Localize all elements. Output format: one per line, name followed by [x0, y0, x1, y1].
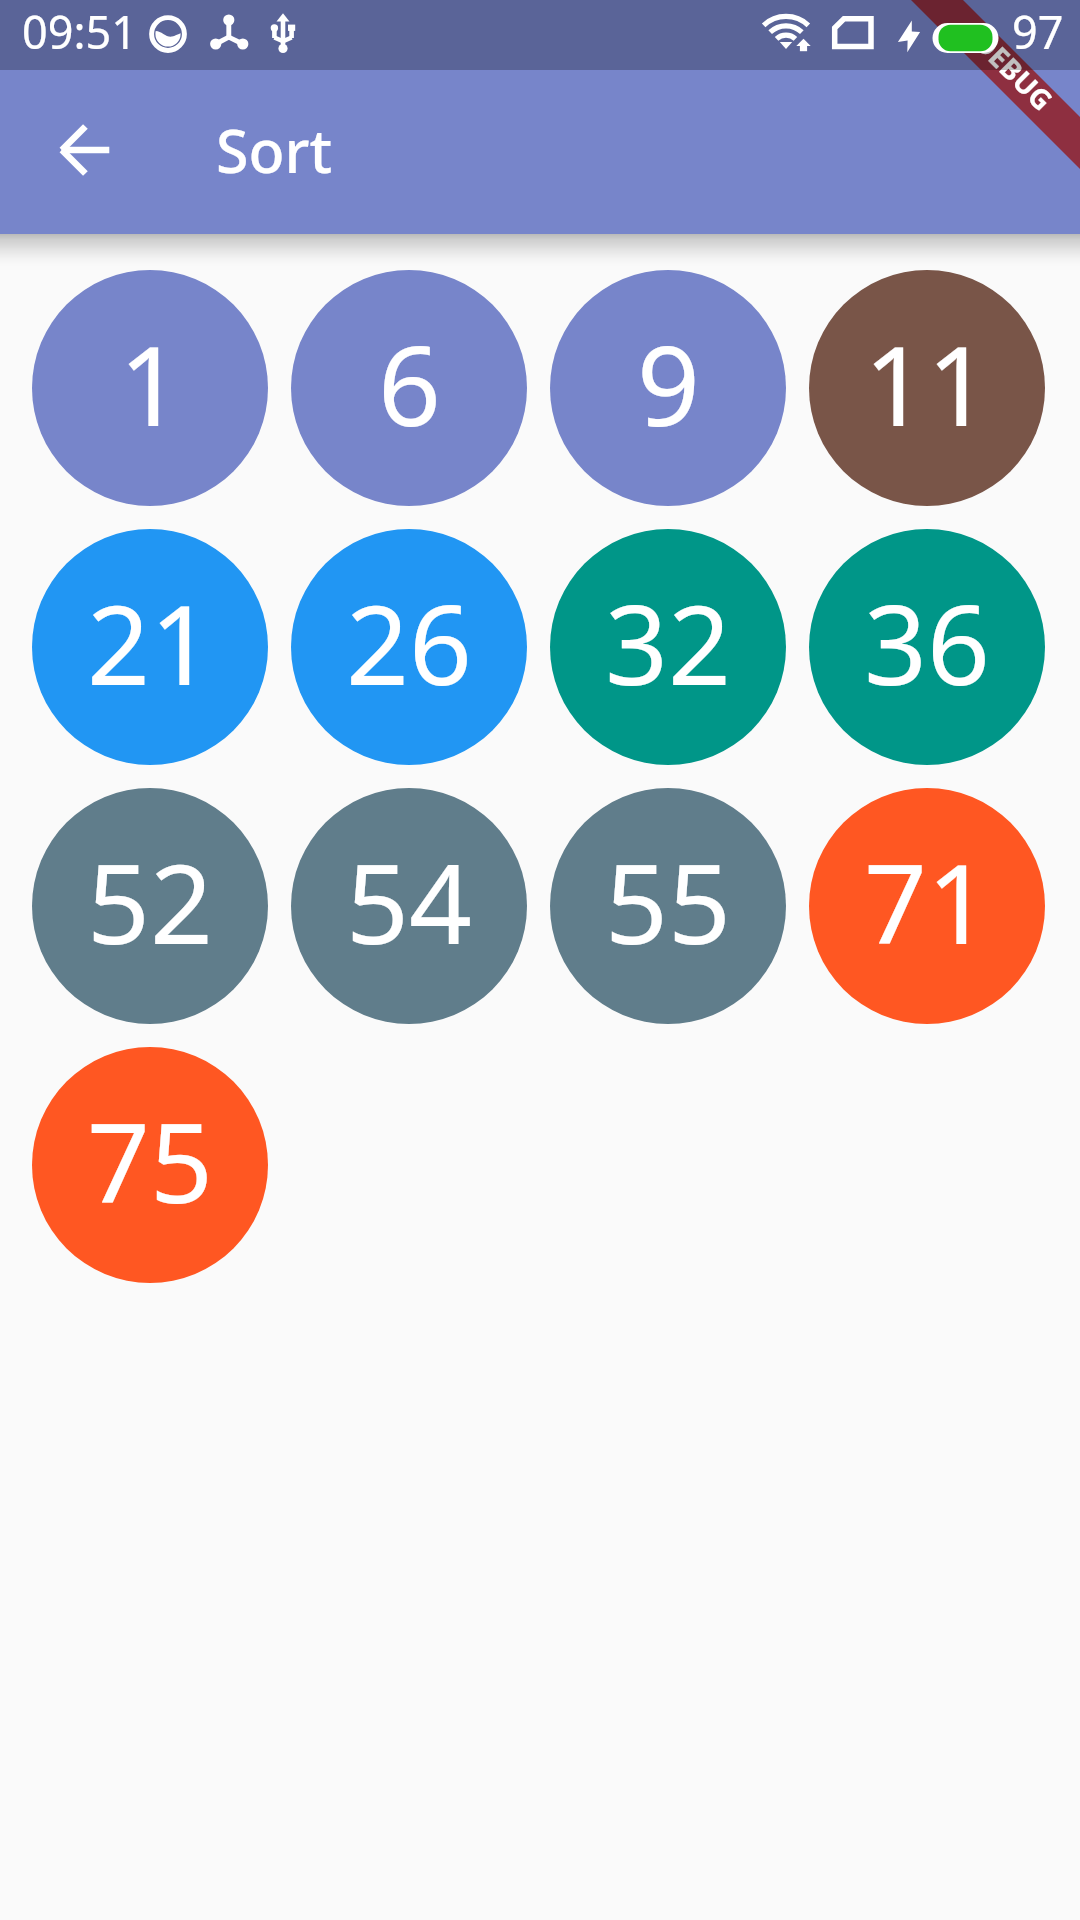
- staticText: 26: [346, 567, 472, 717]
- staticText: 54: [346, 826, 472, 976]
- staticText: Sort: [216, 110, 333, 190]
- staticText: 6: [378, 308, 441, 458]
- staticText: 11: [864, 308, 990, 458]
- staticText: DEBUG: [966, 23, 1062, 119]
- button[interactable]: 32: [550, 529, 786, 765]
- button[interactable]: 1: [32, 270, 268, 506]
- button[interactable]: 71: [809, 788, 1045, 1024]
- button[interactable]: 55: [550, 788, 786, 1024]
- staticText: 97: [1012, 1, 1064, 62]
- staticText: 21: [87, 567, 213, 717]
- button[interactable]: 26: [291, 529, 527, 765]
- staticText: 36: [864, 567, 990, 717]
- staticText: 55: [605, 826, 731, 976]
- staticText: 1: [119, 308, 182, 458]
- staticText: 9: [637, 308, 700, 458]
- staticText: 71: [864, 826, 990, 976]
- button[interactable]: 11: [809, 270, 1045, 506]
- button[interactable]: 21: [32, 529, 268, 765]
- staticText: 32: [605, 567, 731, 717]
- staticText: 09:51: [22, 1, 138, 62]
- button[interactable]: 75: [32, 1047, 268, 1283]
- button[interactable]: 54: [291, 788, 527, 1024]
- button[interactable]: 36: [809, 529, 1045, 765]
- button[interactable]: 52: [32, 788, 268, 1024]
- button[interactable]: 6: [291, 270, 527, 506]
- staticText: 75: [87, 1085, 213, 1235]
- button[interactable]: 9: [550, 270, 786, 506]
- button[interactable]: Navigate up: [49, 102, 145, 198]
- staticText: 52: [87, 826, 213, 976]
